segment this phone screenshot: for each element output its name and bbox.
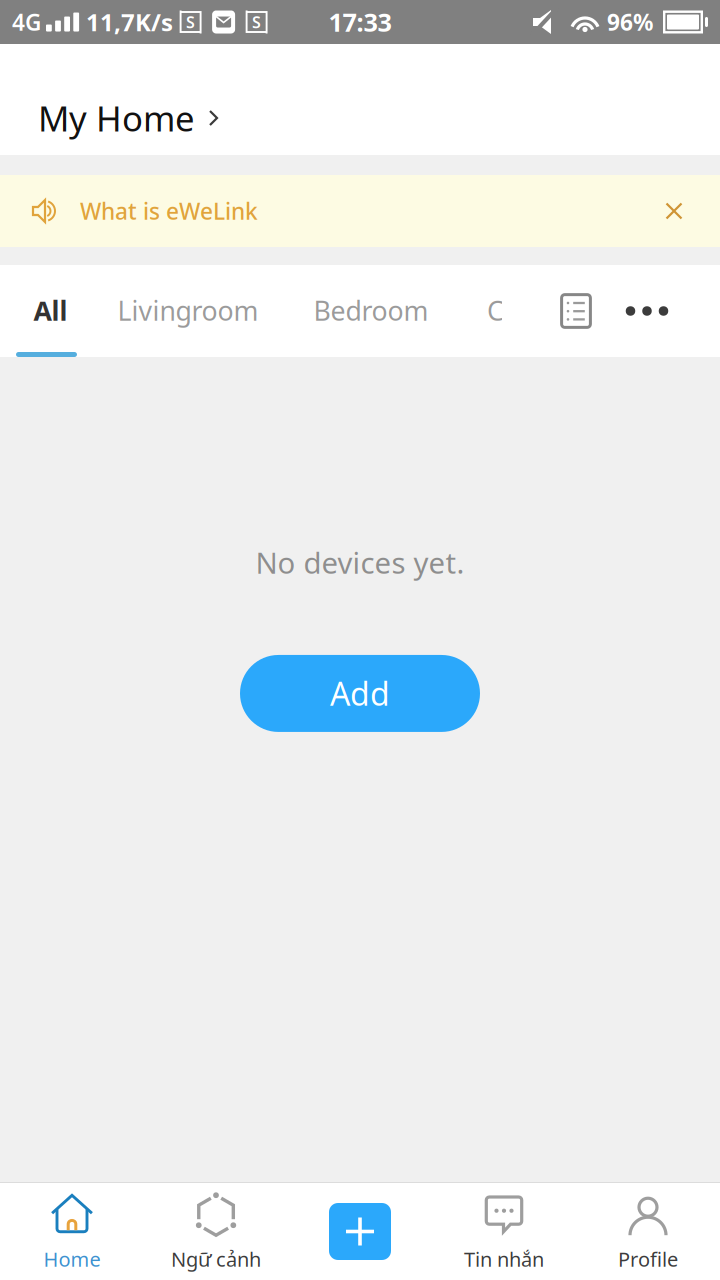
staticText: Ngữ cảnh xyxy=(171,1246,261,1272)
button[interactable]: Tin nhắn xyxy=(432,1183,576,1280)
button[interactable]: More options xyxy=(603,265,691,357)
staticText: What is eWeLink xyxy=(80,196,258,226)
staticText: Add xyxy=(330,672,390,715)
button[interactable]: Add device xyxy=(288,1183,432,1280)
staticText: 17:33 xyxy=(328,5,391,39)
button[interactable]: List view xyxy=(556,265,603,357)
button[interactable]: Bedroom xyxy=(315,265,427,357)
button[interactable]: Ceiling xyxy=(487,265,502,357)
staticText: S xyxy=(252,11,261,33)
button[interactable]: My Home xyxy=(0,44,720,155)
staticText: 96% xyxy=(607,7,653,37)
staticText: Profile xyxy=(618,1246,678,1272)
button[interactable]: Home xyxy=(0,1183,144,1280)
staticText: All xyxy=(33,293,67,328)
staticText: 4G xyxy=(12,7,41,37)
staticText: Bedroom xyxy=(313,293,428,328)
staticText: No devices yet. xyxy=(255,543,464,582)
button[interactable]: Profile xyxy=(576,1183,720,1280)
button[interactable]: Ngữ cảnh xyxy=(144,1183,288,1280)
button[interactable]: Close xyxy=(640,175,708,247)
button[interactable]: All xyxy=(20,265,81,357)
staticText: My Home xyxy=(38,95,195,141)
button[interactable]: Livingroom xyxy=(120,265,256,357)
button[interactable]: Add xyxy=(240,655,480,732)
staticText: 11,7K/s xyxy=(86,6,173,38)
staticText: Ceiling xyxy=(487,293,572,328)
staticText: S xyxy=(186,11,195,33)
staticText: Tin nhắn xyxy=(464,1246,544,1272)
staticText: Livingroom xyxy=(117,293,258,328)
staticText: Home xyxy=(43,1246,100,1272)
